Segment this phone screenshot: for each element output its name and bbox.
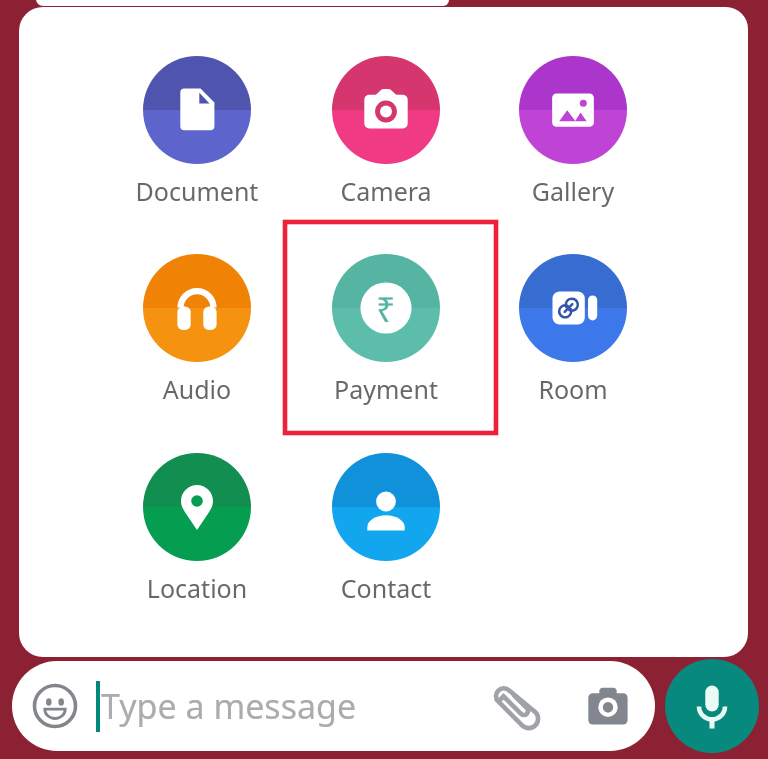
staticText: Camera xyxy=(311,174,461,208)
staticText: Location xyxy=(122,571,272,605)
button[interactable]: Gallery xyxy=(498,56,648,208)
staticText: Room xyxy=(498,372,648,406)
button[interactable]: Location xyxy=(122,453,272,605)
staticText: Document xyxy=(122,174,272,208)
staticText: ₹ xyxy=(376,286,396,332)
staticText: Payment xyxy=(311,372,461,406)
button[interactable]: Camera xyxy=(580,679,636,735)
button[interactable]: Camera xyxy=(311,56,461,208)
staticText: Audio xyxy=(122,372,272,406)
staticText: Contact xyxy=(311,571,461,605)
button[interactable]: Voice message xyxy=(665,659,759,753)
staticText: Gallery xyxy=(498,174,648,208)
button[interactable]: Contact xyxy=(311,453,461,605)
button[interactable]: Emoji xyxy=(31,682,79,730)
staticText: Type a message xyxy=(101,683,357,729)
button[interactable]: Document xyxy=(122,56,272,208)
button[interactable]: Room xyxy=(498,254,648,406)
button[interactable]: Attach xyxy=(491,678,547,734)
button[interactable]: Audio xyxy=(122,254,272,406)
button[interactable]: ₹ xyxy=(311,254,461,406)
